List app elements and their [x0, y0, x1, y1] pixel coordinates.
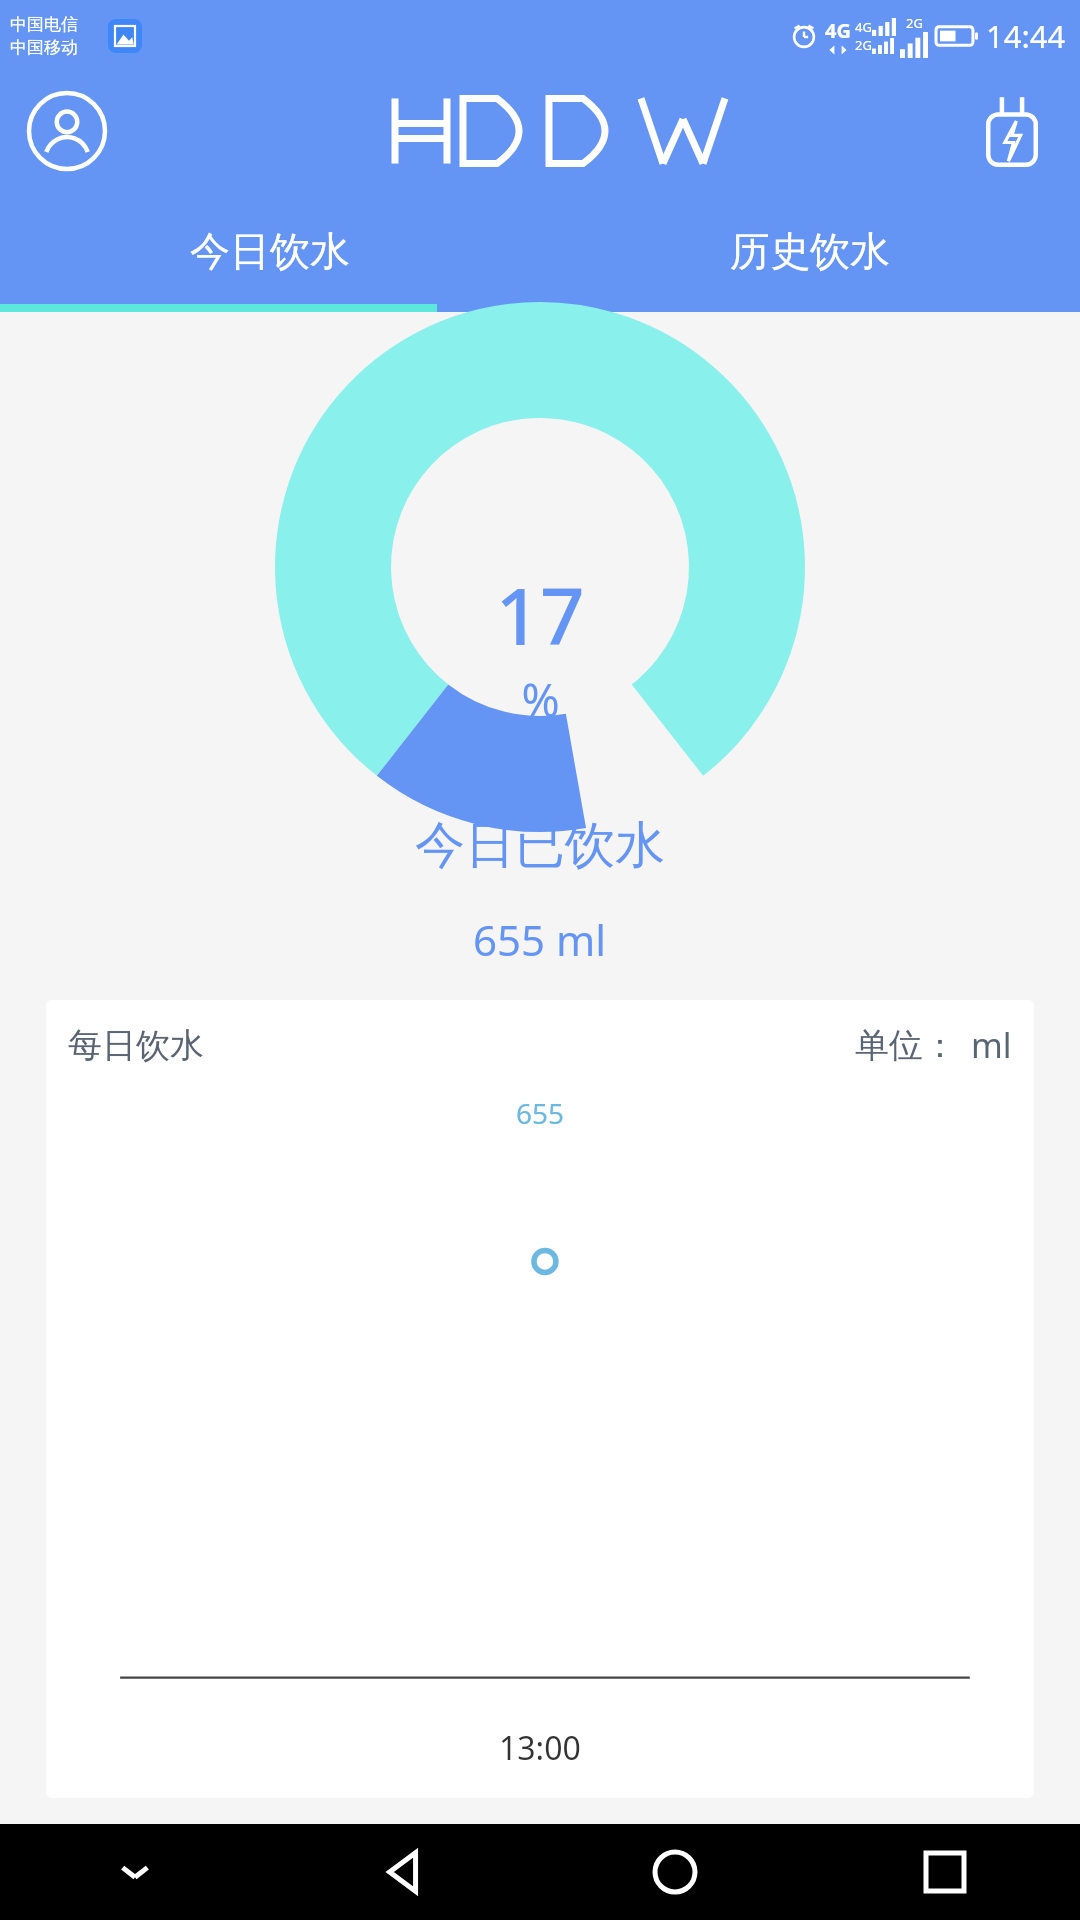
staticText: ml [971, 1022, 1012, 1068]
staticText: 655 [516, 1094, 565, 1132]
staticText: 4G [855, 18, 872, 36]
button[interactable]: Profile [26, 90, 108, 172]
staticText: 今日已饮水 [415, 814, 665, 877]
staticText: 2G [855, 36, 872, 54]
staticText: 中国移动 [10, 37, 78, 58]
button[interactable]: 今日饮水 [0, 190, 540, 312]
staticText: 单位： [855, 1024, 957, 1067]
staticText: 17 [495, 562, 585, 668]
staticText: 655 ml [473, 911, 607, 968]
staticText: 4G [825, 17, 851, 44]
staticText: 13:00 [499, 1726, 581, 1770]
staticText: 中国电信 [10, 14, 78, 35]
staticText: 每日饮水 [68, 1024, 204, 1067]
button[interactable]: 历史饮水 [540, 190, 1080, 312]
button[interactable]: Back [270, 1824, 540, 1920]
button[interactable]: Hide [0, 1824, 270, 1920]
staticText: 历史饮水 [730, 226, 890, 276]
staticText: 2G [906, 14, 923, 32]
staticText: 14:44 [986, 15, 1066, 57]
button[interactable]: Charger [976, 95, 1048, 167]
button[interactable]: Recents [810, 1824, 1080, 1920]
staticText: % [521, 668, 560, 731]
button[interactable]: Home [540, 1824, 810, 1920]
staticText: 今日饮水 [190, 226, 350, 276]
button[interactable]: 每日饮水 [46, 1000, 1034, 1798]
